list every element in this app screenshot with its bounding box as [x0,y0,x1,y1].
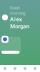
staticText: Good morning [10,5,25,16]
staticText: Alex Morgan [10,16,29,30]
